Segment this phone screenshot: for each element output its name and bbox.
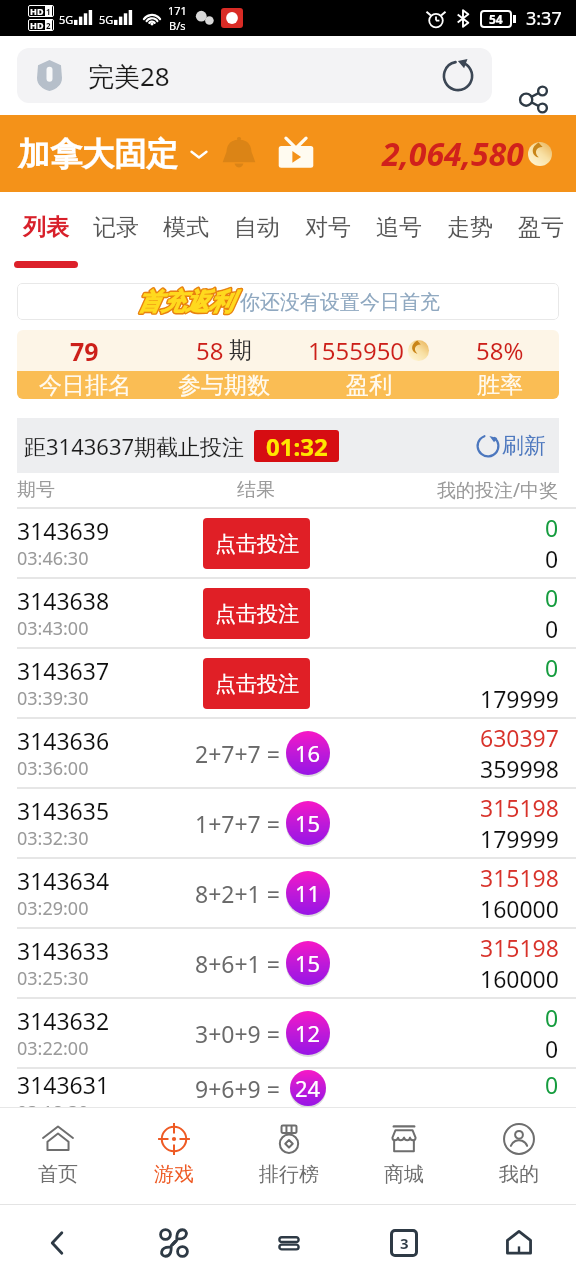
- staticText: 8+2+1 =: [195, 878, 280, 909]
- staticText: 03:29:00: [17, 896, 89, 921]
- staticText: 首充返利: [137, 287, 233, 317]
- staticText: 追号: [376, 213, 422, 242]
- staticText: 1: [46, 6, 51, 17]
- staticText: 盈亏: [518, 213, 564, 242]
- button[interactable]: 自动: [221, 192, 292, 261]
- button[interactable]: 走势: [434, 192, 505, 261]
- button[interactable]: Notifications: [219, 134, 259, 174]
- staticText: 171: [168, 3, 187, 18]
- staticText: 01:32: [266, 430, 328, 462]
- button[interactable]: 对号: [292, 192, 363, 261]
- staticText: 5G: [99, 12, 114, 27]
- staticText: 记录: [93, 213, 139, 242]
- button[interactable]: 3143634: [0, 859, 576, 927]
- staticText: 2: [46, 20, 51, 31]
- staticText: 参与期数: [178, 371, 270, 399]
- staticText: 630397: [480, 722, 559, 753]
- button[interactable]: Recent apps: [346, 1205, 461, 1280]
- staticText: 期: [229, 336, 252, 365]
- staticText: 0: [545, 1002, 559, 1033]
- staticText: 点击投注: [215, 671, 299, 697]
- staticText: 03:25:30: [17, 966, 89, 991]
- button[interactable]: 点击投注: [203, 658, 310, 709]
- button[interactable]: Live: [276, 134, 316, 174]
- button[interactable]: 点击投注: [203, 588, 310, 639]
- button[interactable]: 刷新: [475, 432, 546, 460]
- button[interactable]: 3143631: [0, 1069, 576, 1107]
- button[interactable]: 3143639: [0, 509, 576, 577]
- button[interactable]: 3143637: [0, 649, 576, 717]
- staticText: 179999: [480, 683, 559, 714]
- button[interactable]: 游戏: [116, 1108, 231, 1204]
- staticText: 160000: [480, 963, 559, 994]
- staticText: 盈利: [346, 371, 392, 399]
- staticText: 3143631: [17, 1069, 110, 1100]
- staticText: 315198: [480, 792, 559, 823]
- staticText: 03:46:30: [17, 546, 89, 571]
- staticText: 3143633: [17, 935, 110, 966]
- button[interactable]: 加拿大固定: [18, 134, 210, 174]
- staticText: 商城: [384, 1162, 424, 1187]
- button[interactable]: 排行榜: [231, 1108, 346, 1204]
- staticText: 315198: [480, 862, 559, 893]
- staticText: 点击投注: [215, 601, 299, 627]
- staticText: 我的投注/中奖: [437, 477, 559, 503]
- button[interactable]: Split screen: [231, 1205, 346, 1280]
- staticText: 5G: [59, 12, 74, 27]
- staticText: 今日排名: [39, 371, 131, 399]
- button[interactable]: 列表: [11, 192, 81, 268]
- staticText: 3143636: [17, 725, 110, 756]
- staticText: 15: [295, 808, 321, 838]
- button[interactable]: Refresh: [436, 54, 480, 98]
- staticText: 完美28: [88, 58, 170, 94]
- button[interactable]: 3143635: [0, 789, 576, 857]
- staticText: 排行榜: [259, 1162, 319, 1187]
- button[interactable]: 追号: [363, 192, 434, 261]
- staticText: 3143637: [17, 655, 110, 686]
- button[interactable]: 模式: [151, 192, 221, 261]
- staticText: 0: [545, 582, 559, 613]
- staticText: 对号: [305, 213, 351, 242]
- button[interactable]: Home: [461, 1205, 576, 1280]
- staticText: 8+6+1 =: [195, 948, 280, 979]
- staticText: 3143632: [17, 1005, 110, 1036]
- staticText: HD: [30, 5, 44, 17]
- staticText: 0: [545, 543, 559, 574]
- button[interactable]: 首充返利: [17, 283, 559, 320]
- staticText: 胜率: [477, 371, 523, 399]
- staticText: 1555950: [308, 334, 405, 367]
- staticText: 3+0+9 =: [195, 1018, 280, 1049]
- staticText: 你还没有设置今日首充: [240, 290, 440, 315]
- button[interactable]: Share: [505, 83, 561, 115]
- staticText: 9+6+9 =: [195, 1073, 280, 1104]
- staticText: 16: [295, 738, 321, 768]
- button[interactable]: Apps: [116, 1205, 231, 1280]
- button[interactable]: 盈亏: [505, 192, 576, 261]
- staticText: 2+7+7 =: [195, 738, 280, 769]
- staticText: 3143635: [17, 795, 110, 826]
- button[interactable]: Back: [0, 1205, 116, 1280]
- staticText: 结果: [237, 478, 275, 502]
- staticText: 2,064,580: [382, 132, 524, 176]
- staticText: 0: [545, 1069, 559, 1100]
- staticText: 179999: [480, 823, 559, 854]
- button[interactable]: 我的: [461, 1108, 576, 1204]
- staticText: 加拿大固定: [18, 134, 178, 174]
- staticText: 160000: [480, 893, 559, 924]
- staticText: 03:32:30: [17, 826, 89, 851]
- button[interactable]: 首页: [0, 1108, 116, 1204]
- staticText: 3: [400, 1233, 409, 1253]
- button[interactable]: 商城: [346, 1108, 461, 1204]
- button[interactable]: 完美28: [17, 48, 492, 103]
- button[interactable]: 点击投注: [203, 518, 310, 569]
- staticText: 自动: [234, 213, 280, 242]
- button[interactable]: 3143633: [0, 929, 576, 997]
- staticText: 79: [70, 334, 99, 368]
- staticText: 03:18:30: [17, 1100, 89, 1107]
- staticText: 走势: [447, 213, 493, 242]
- button[interactable]: 记录: [81, 192, 151, 261]
- button[interactable]: 3143638: [0, 579, 576, 647]
- button[interactable]: 3143636: [0, 719, 576, 787]
- button[interactable]: 3143632: [0, 999, 576, 1067]
